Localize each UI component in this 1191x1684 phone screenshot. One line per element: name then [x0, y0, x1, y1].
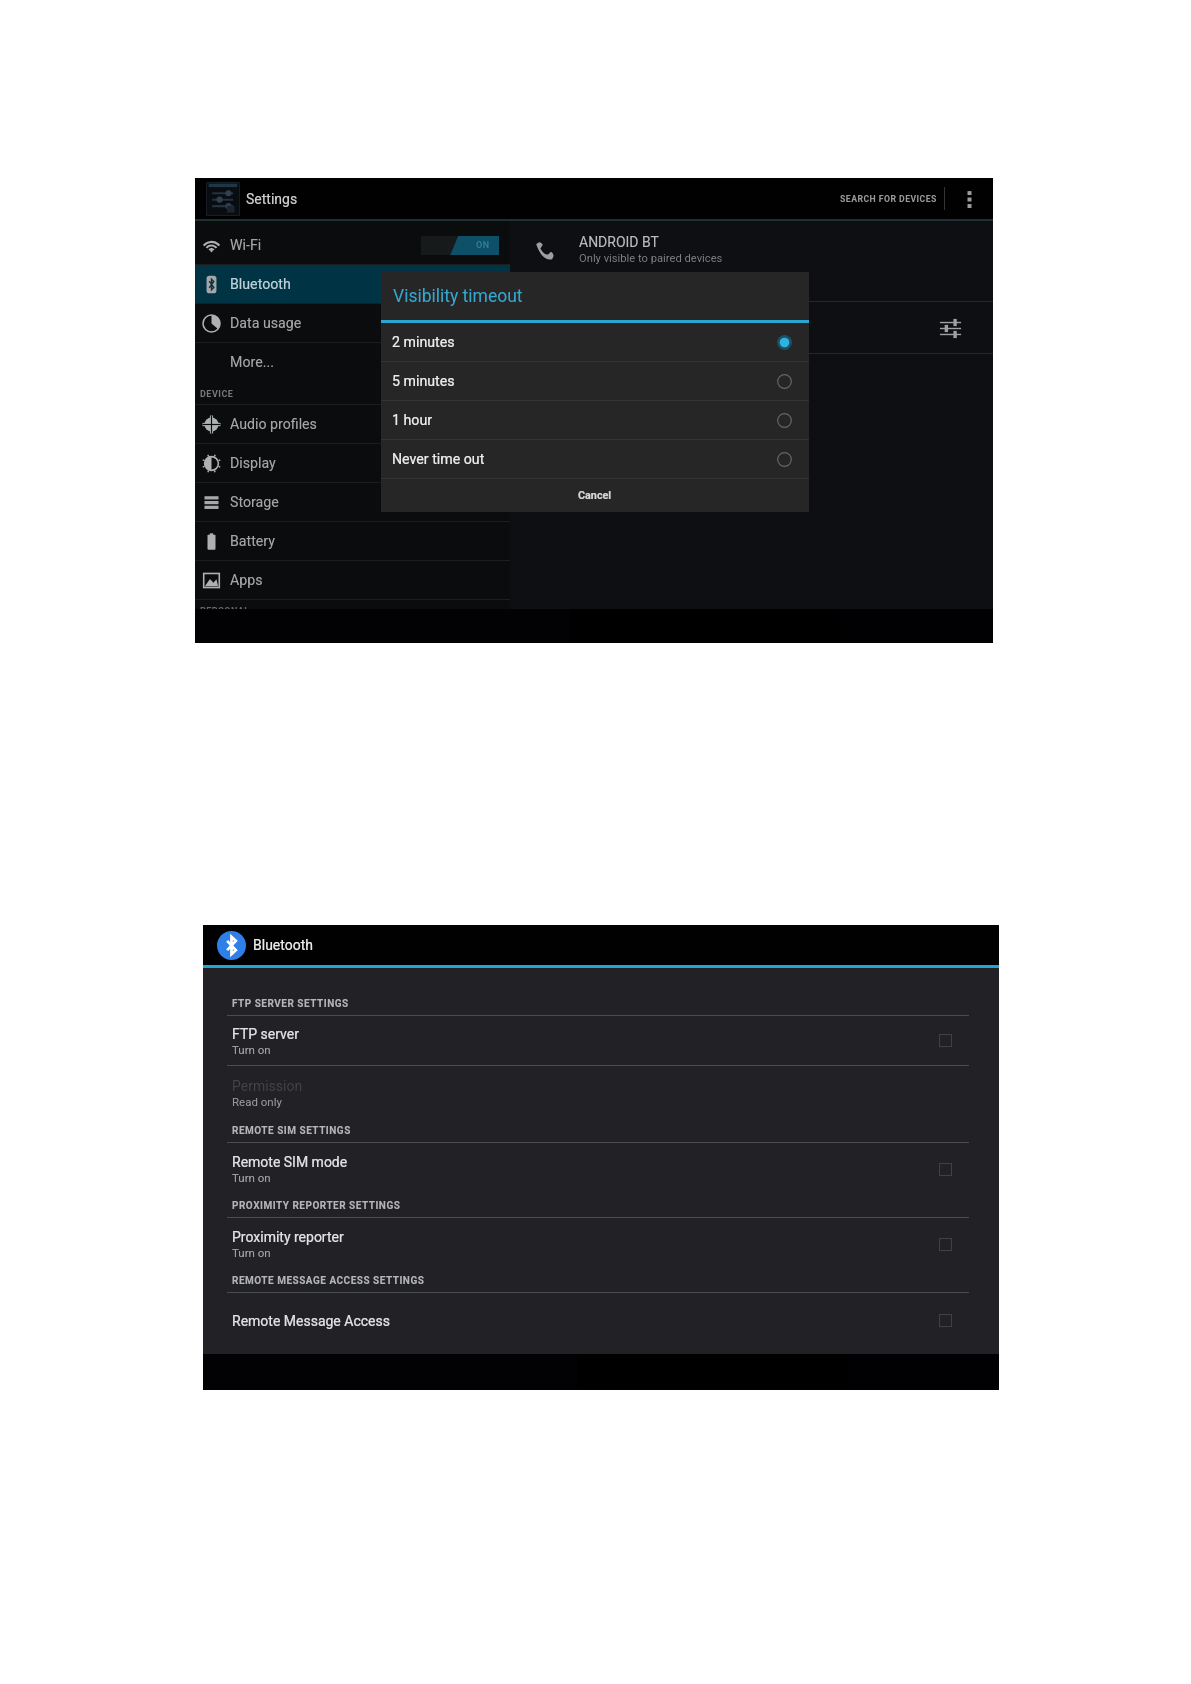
- staticText: Battery: [230, 533, 276, 550]
- staticText: Remote SIM mode: [232, 1154, 348, 1170]
- button[interactable]: Wi-Fi: [195, 226, 510, 264]
- staticText: Data usage: [230, 315, 302, 332]
- staticText: REMOTE SIM SETTINGS: [232, 1125, 351, 1137]
- button[interactable]: Storage: [195, 483, 510, 521]
- button[interactable]: Remote SIM mode: [203, 1143, 999, 1195]
- staticText: Wi-Fi: [230, 237, 262, 254]
- button[interactable]: 1 hour: [381, 401, 809, 439]
- staticText: ANDROID BT: [579, 234, 659, 250]
- button[interactable]: Proximity reporter: [203, 1218, 999, 1270]
- staticText: Proximity reporter: [232, 1229, 344, 1245]
- button[interactable]: ANDROID BT: [510, 221, 993, 301]
- staticText: SEARCH FOR DEVICES: [840, 194, 937, 204]
- button[interactable]: Bluetooth: [195, 265, 510, 303]
- staticText: Only visible to paired devices: [579, 252, 723, 265]
- button[interactable]: Battery: [195, 522, 510, 560]
- staticText: Bluetooth: [253, 937, 313, 953]
- staticText: Bluetooth: [230, 276, 291, 293]
- button[interactable]: Permission: [203, 1066, 999, 1120]
- button[interactable]: Display: [195, 444, 510, 482]
- staticText: PERSONAL: [200, 606, 250, 609]
- staticText: Turn on: [232, 1171, 271, 1184]
- staticText: 1 hour: [392, 412, 433, 429]
- staticText: Audio profiles: [230, 416, 317, 433]
- button[interactable]: 2 minutes: [381, 323, 809, 361]
- button[interactable]: Remote Message Access: [203, 1293, 999, 1348]
- button[interactable]: Data usage: [195, 304, 510, 342]
- button[interactable]: SEARCH FOR DEVICES: [833, 178, 944, 219]
- button[interactable]: More...: [195, 343, 510, 381]
- staticText: 5 minutes: [392, 373, 455, 390]
- staticText: Read only: [232, 1095, 282, 1108]
- button[interactable]: 5 minutes: [381, 362, 809, 400]
- staticText: Visibility timeout: [393, 286, 523, 307]
- staticText: 2 minutes: [392, 334, 455, 351]
- button[interactable]: Audio profiles: [195, 405, 510, 443]
- button[interactable]: Never time out: [381, 440, 809, 478]
- staticText: Permission: [232, 1078, 303, 1094]
- button[interactable]: FTP server: [203, 1016, 999, 1065]
- staticText: REMOTE MESSAGE ACCESS SETTINGS: [232, 1275, 425, 1287]
- staticText: Apps: [230, 572, 263, 589]
- button[interactable]: Bluetooth: [203, 925, 331, 965]
- button[interactable]: More options: [945, 178, 993, 219]
- staticText: ON: [476, 240, 490, 251]
- staticText: Display: [230, 455, 276, 472]
- staticText: Turn on: [232, 1246, 271, 1259]
- staticText: Turn on: [232, 1043, 271, 1056]
- button[interactable]: Cancel: [381, 479, 809, 512]
- staticText: PROXIMITY REPORTER SETTINGS: [232, 1200, 401, 1212]
- staticText: DEVICE: [200, 389, 234, 400]
- staticText: FTP server: [232, 1026, 299, 1042]
- button[interactable]: Settings: [195, 178, 310, 219]
- button[interactable]: Apps: [195, 561, 510, 599]
- staticText: Storage: [230, 494, 279, 511]
- staticText: Never time out: [392, 451, 485, 468]
- button[interactable]: Advanced settings: [931, 309, 969, 347]
- staticText: More...: [230, 354, 274, 371]
- staticText: Remote Message Access: [232, 1313, 390, 1329]
- staticText: Cancel: [578, 489, 612, 502]
- staticText: Settings: [246, 191, 298, 207]
- staticText: FTP SERVER SETTINGS: [232, 998, 349, 1010]
